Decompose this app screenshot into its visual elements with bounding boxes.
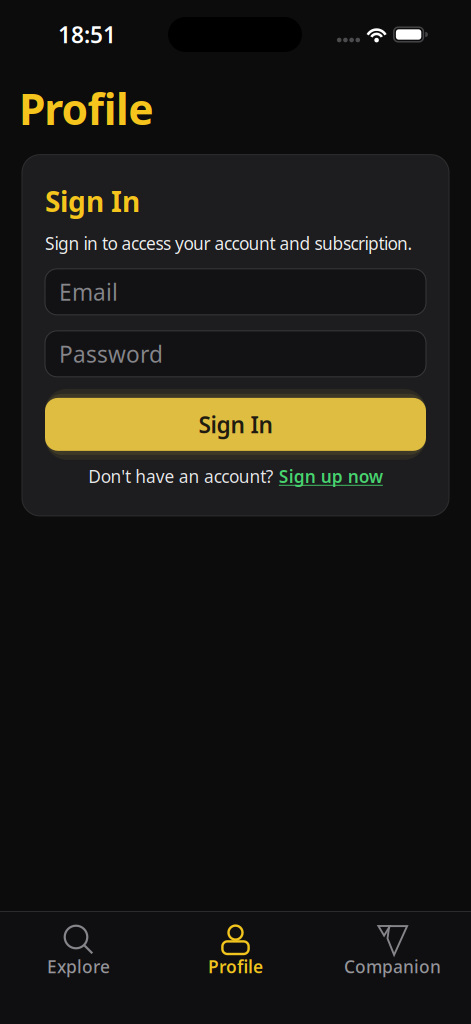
staticText: Profile (19, 80, 153, 137)
staticText: Profile (208, 955, 263, 978)
button[interactable]: Profile (157, 924, 314, 978)
button[interactable]: Sign up now (279, 465, 383, 488)
staticText: Sign up now (279, 465, 383, 488)
staticText: Sign In (45, 183, 140, 220)
staticText: Explore (47, 955, 110, 978)
staticText: Companion (344, 955, 441, 978)
button[interactable]: Explore (0, 924, 157, 978)
staticText: 18:51 (58, 19, 116, 49)
button[interactable]: Companion (314, 924, 471, 978)
staticText: Sign In (198, 409, 272, 439)
staticText: Password (59, 339, 163, 369)
button[interactable]: Email (45, 269, 426, 315)
button[interactable]: Sign In (45, 398, 426, 451)
staticText: Sign in to access your account and subsc… (45, 232, 412, 255)
staticText: Don't have an account? (88, 465, 274, 488)
staticText: Email (59, 277, 118, 307)
button[interactable]: Password (45, 331, 426, 377)
